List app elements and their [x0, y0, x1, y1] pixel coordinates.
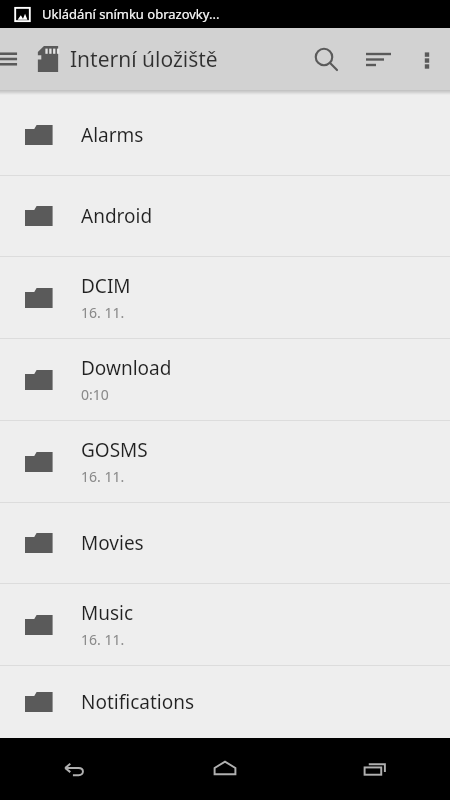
button[interactable]: Recent apps [300, 738, 450, 800]
staticText: Download [81, 355, 172, 381]
button[interactable]: Movies [0, 503, 450, 583]
staticText: Alarms [81, 122, 144, 148]
staticText: DCIM [81, 273, 131, 299]
staticText: Ukládání snímku obrazovky... [42, 5, 220, 23]
staticText: 16. 11. [81, 630, 125, 649]
staticText: Interní úložiště [70, 45, 300, 74]
button[interactable]: Search [300, 28, 352, 90]
button[interactable]: Internal storage [30, 41, 66, 77]
button[interactable]: Android [0, 176, 450, 256]
button[interactable]: Home [150, 738, 300, 800]
button[interactable]: GOSMS [0, 421, 450, 502]
staticText: Android [81, 203, 153, 229]
button[interactable]: Notifications [0, 666, 450, 738]
button[interactable]: More options [404, 28, 450, 90]
staticText: GOSMS [81, 437, 148, 463]
button[interactable]: DCIM [0, 257, 450, 338]
button[interactable]: Open navigation drawer [0, 28, 24, 90]
staticText: Movies [81, 530, 144, 556]
button[interactable]: Music [0, 584, 450, 665]
button[interactable]: Back [0, 738, 150, 800]
staticText: Notifications [81, 689, 195, 715]
staticText: 16. 11. [81, 467, 125, 486]
staticText: Music [81, 600, 134, 626]
button[interactable]: Download [0, 339, 450, 420]
button[interactable]: Sort [352, 28, 404, 90]
staticText: 16. 11. [81, 303, 125, 322]
button[interactable]: Alarms [0, 95, 450, 175]
staticText: 0:10 [81, 385, 109, 404]
